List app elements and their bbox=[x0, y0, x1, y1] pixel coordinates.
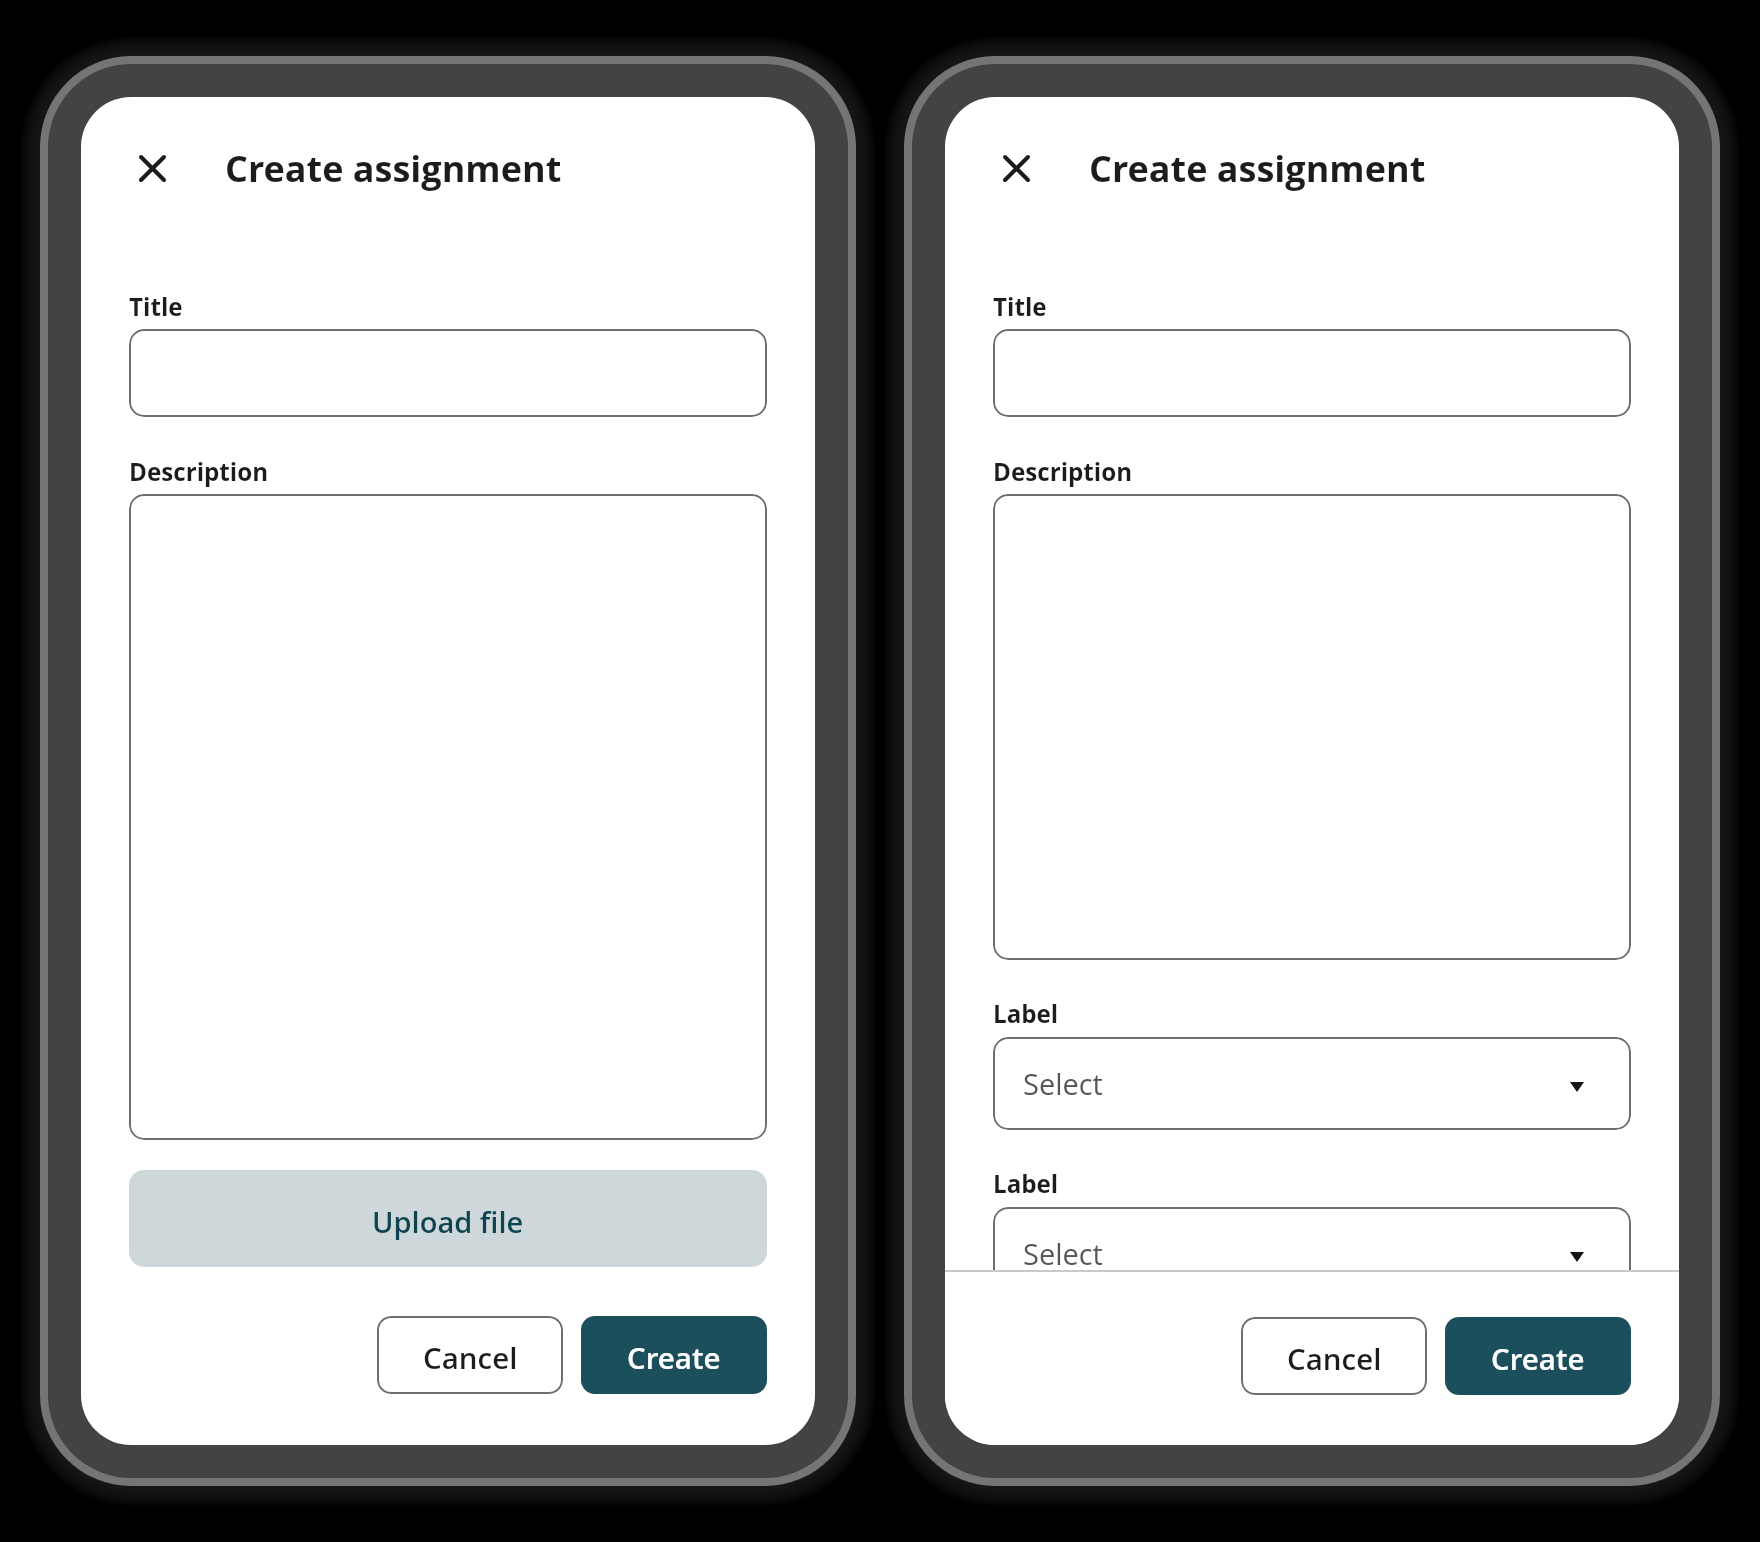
staticText: Create bbox=[1491, 1338, 1585, 1378]
staticText: Upload file bbox=[372, 1202, 524, 1241]
staticText: Create assignment bbox=[1089, 144, 1426, 193]
staticText: Select bbox=[1023, 1064, 1103, 1103]
staticText: Label bbox=[993, 1167, 1059, 1200]
button[interactable]: Create bbox=[581, 1316, 767, 1394]
staticText: Description bbox=[129, 455, 269, 488]
staticText: Description bbox=[993, 455, 1133, 488]
button[interactable]: Close bbox=[992, 144, 1040, 192]
staticText: Title bbox=[993, 290, 1047, 323]
staticText: Create bbox=[627, 1337, 721, 1377]
staticText: Create assignment bbox=[225, 144, 562, 193]
staticText: Cancel bbox=[1287, 1338, 1382, 1378]
button[interactable]: Create bbox=[1445, 1317, 1631, 1395]
button[interactable]: Upload file bbox=[129, 1170, 767, 1267]
staticText: Cancel bbox=[423, 1337, 518, 1377]
button[interactable] bbox=[129, 494, 767, 1140]
button[interactable]: Cancel bbox=[377, 1316, 563, 1394]
staticText: Title bbox=[129, 290, 183, 323]
button[interactable] bbox=[993, 494, 1631, 960]
button[interactable] bbox=[129, 329, 767, 417]
button[interactable]: Select bbox=[993, 1037, 1631, 1130]
staticText: Label bbox=[993, 997, 1059, 1030]
button[interactable]: Cancel bbox=[1241, 1317, 1427, 1395]
button[interactable]: Select bbox=[993, 1207, 1631, 1300]
staticText: Select bbox=[1023, 1234, 1103, 1273]
button[interactable] bbox=[993, 329, 1631, 417]
button[interactable]: Close bbox=[128, 144, 176, 192]
